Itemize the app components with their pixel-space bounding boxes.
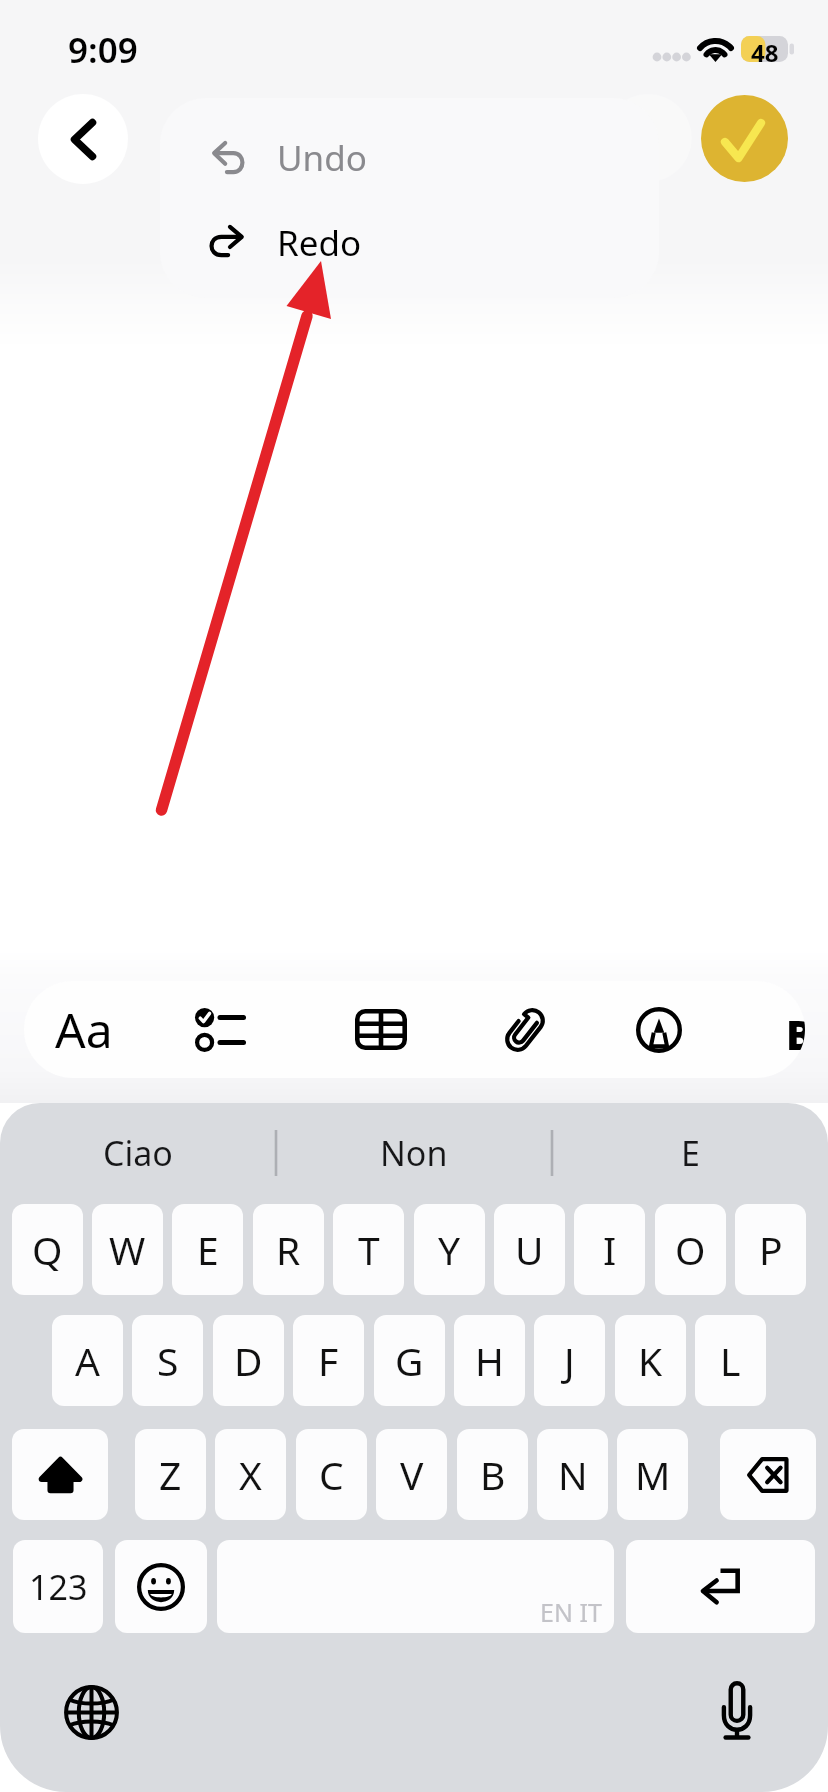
button[interactable]: Change keyboard [57,1678,125,1746]
staticText: 48 [751,36,779,62]
button[interactable]: Ciao [0,1103,276,1203]
staticText: EN IT [540,1595,602,1629]
staticText: A [75,1334,100,1387]
button[interactable]: Redo [160,198,659,298]
staticText: L [720,1334,741,1387]
button[interactable]: K [615,1315,686,1406]
button[interactable]: Z [135,1429,206,1520]
button[interactable]: R [253,1204,324,1295]
staticText: D [234,1334,263,1387]
button[interactable]: Space [217,1540,614,1633]
button[interactable]: U [494,1204,565,1295]
button[interactable]: Shift [12,1429,108,1520]
button[interactable]: Table [325,981,437,1078]
button[interactable]: More [724,981,805,1078]
button[interactable]: E [172,1204,243,1295]
button[interactable]: P [735,1204,806,1295]
button[interactable]: E [552,1103,828,1203]
button[interactable]: Dictate [703,1675,771,1743]
button[interactable]: Checklist [164,981,276,1078]
staticText: G [395,1334,424,1387]
button[interactable]: Markup [603,981,715,1078]
button[interactable]: M [617,1429,688,1520]
staticText: J [564,1334,575,1387]
staticText: Non [380,1130,448,1176]
staticText: O [675,1223,706,1276]
staticText: E [681,1130,700,1176]
staticText: 9:09 [68,26,138,74]
button[interactable]: S [132,1315,203,1406]
staticText: Q [32,1223,63,1276]
staticText: X [239,1448,262,1501]
button[interactable]: B [457,1429,528,1520]
button[interactable]: I [574,1204,645,1295]
button[interactable]: A [52,1315,123,1406]
staticText: B [480,1448,506,1501]
staticText: U [515,1223,544,1276]
button[interactable]: Non [276,1103,552,1203]
button[interactable]: Return [626,1540,815,1633]
button[interactable]: Emoji [115,1540,207,1633]
staticText: Z [159,1448,182,1501]
button[interactable]: Back [38,94,128,184]
button[interactable]: O [655,1204,726,1295]
button[interactable]: Attach [469,981,581,1078]
button[interactable]: N [537,1429,608,1520]
staticText: P [759,1223,783,1276]
staticText: R [276,1223,301,1276]
button[interactable]: T [333,1204,404,1295]
staticText: B [786,1007,805,1061]
button[interactable]: Undo [160,98,659,198]
staticText: Y [438,1223,461,1276]
staticText: W [109,1223,146,1276]
staticText: K [638,1334,663,1387]
button[interactable]: Aa [31,981,136,1078]
staticText: Aa [55,997,113,1062]
staticText: S [157,1334,179,1387]
button[interactable]: D [213,1315,284,1406]
staticText: N [558,1448,588,1501]
button[interactable]: H [454,1315,525,1406]
staticText: E [197,1223,219,1276]
button[interactable]: X [215,1429,286,1520]
staticText: I [603,1223,617,1276]
button[interactable]: G [374,1315,445,1406]
button[interactable]: W [92,1204,163,1295]
button[interactable]: V [376,1429,447,1520]
button[interactable]: Done [701,95,788,182]
staticText: T [358,1223,380,1276]
button[interactable]: Y [414,1204,485,1295]
staticText: F [318,1334,339,1387]
button[interactable]: C [296,1429,367,1520]
staticText: 123 [29,1564,88,1610]
staticText: M [635,1448,671,1501]
button[interactable]: F [293,1315,364,1406]
button[interactable]: L [695,1315,766,1406]
staticText: H [475,1334,504,1387]
staticText: Undo [277,134,367,182]
staticText: C [319,1448,344,1501]
staticText: Ciao [103,1130,173,1176]
button[interactable]: Q [12,1204,83,1295]
staticText: V [400,1448,424,1501]
staticText: Redo [277,219,362,267]
button[interactable]: J [534,1315,605,1406]
button[interactable]: Backspace [720,1429,816,1520]
button[interactable]: 123 [13,1540,103,1633]
